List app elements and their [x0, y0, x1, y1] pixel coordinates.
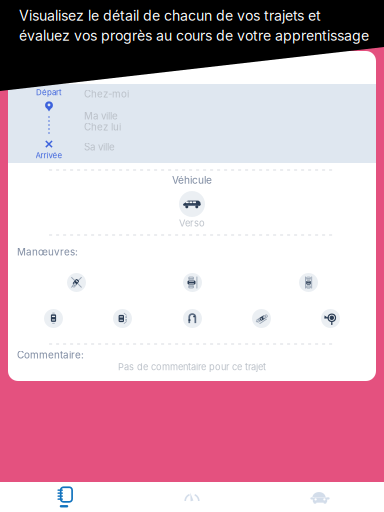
staticText: Arrivée	[35, 151, 62, 160]
button[interactable]: Carnet de bord	[0, 482, 128, 512]
staticText: évaluez vos progrès au cours de votre ap…	[19, 27, 369, 44]
staticText: Pas de commentaire pour ce trajet	[118, 361, 266, 372]
button[interactable]: Progression	[128, 482, 256, 512]
staticText: Visualisez le détail de chacun de vos tr…	[19, 7, 321, 24]
staticText: Verso	[179, 217, 205, 229]
staticText: Ma ville	[84, 110, 118, 122]
staticText: Commentaire:	[17, 349, 84, 361]
staticText: Véhicule	[172, 174, 212, 186]
staticText: Sa ville	[84, 141, 115, 153]
staticText: Chez-moi	[84, 88, 129, 100]
button[interactable]: Véhicule	[256, 482, 384, 512]
staticText: Départ	[36, 88, 62, 97]
staticText: Chez lui	[84, 121, 121, 133]
staticText: Manœuvres:	[17, 246, 78, 258]
